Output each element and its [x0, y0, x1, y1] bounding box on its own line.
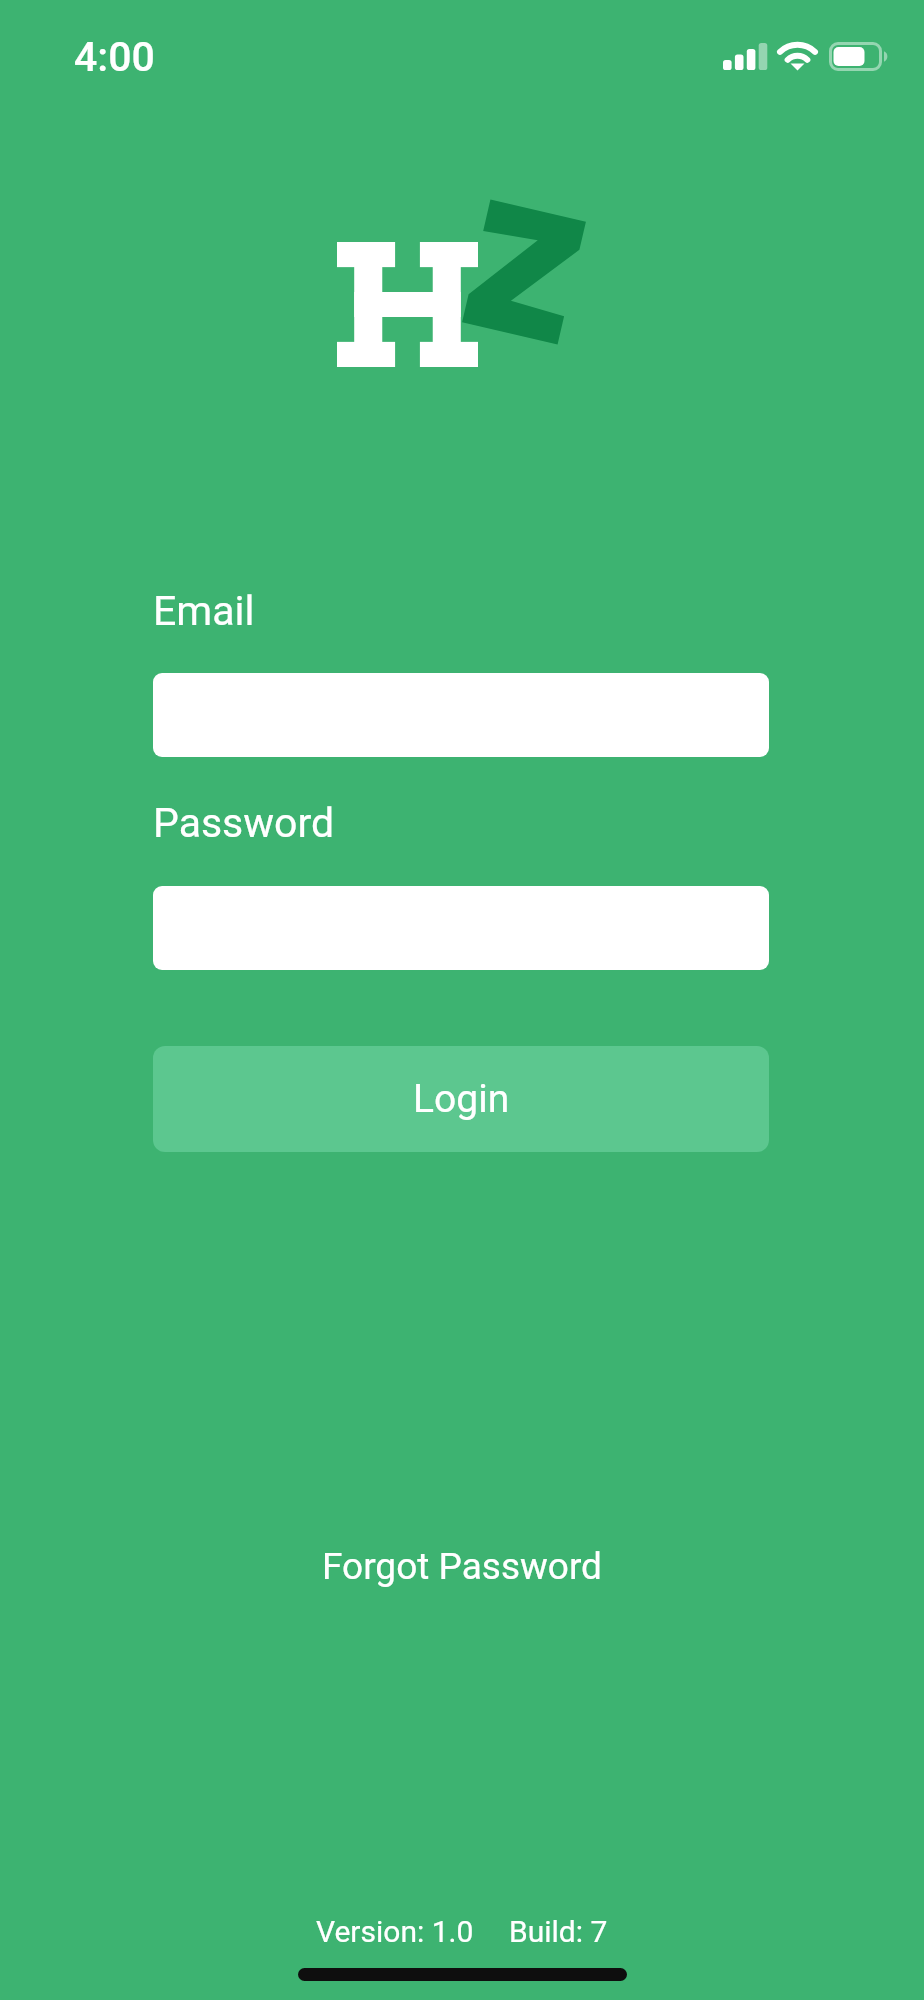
- staticText: Password: [153, 799, 335, 847]
- staticText: Version: 1.0: [316, 1914, 474, 1949]
- other: Wi-Fi: [778, 41, 818, 71]
- button[interactable]: Forgot Password: [302, 1531, 622, 1602]
- other: Cellular signal: [723, 43, 767, 70]
- button[interactable]: Email input field: [153, 673, 769, 757]
- staticText: Forgot Password: [322, 1545, 602, 1588]
- staticText: 4:00: [74, 33, 155, 81]
- button[interactable]: Login: [153, 1046, 769, 1152]
- button[interactable]: Password input field: [153, 886, 769, 970]
- staticText: Build: 7: [509, 1914, 608, 1949]
- other: Battery: [829, 42, 888, 71]
- staticText: Login: [413, 1076, 510, 1122]
- staticText: Email: [153, 587, 255, 635]
